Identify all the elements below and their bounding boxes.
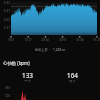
staticText: 10:17 xyxy=(21,38,35,42)
button[interactable]: 6.92 xyxy=(0,0,100,100)
staticText: 4.02 xyxy=(0,18,10,22)
staticText: 2.57 xyxy=(0,26,10,30)
staticText: 平均 xyxy=(5,79,50,83)
staticText: 20:34 xyxy=(38,38,52,42)
staticText: 高度上昇 ・ 1,248 m xyxy=(0,47,100,52)
staticText: 51:25 xyxy=(90,38,100,42)
staticText: 最大 xyxy=(50,79,95,83)
staticText: 30:51 xyxy=(56,38,70,42)
staticText: 120 xyxy=(0,94,10,98)
staticText: 心拍数 (bpm) xyxy=(3,60,30,66)
staticText: 6.92 xyxy=(0,1,10,5)
staticText: 41:08 xyxy=(73,38,87,42)
staticText: 164 xyxy=(50,71,95,80)
staticText: 133 xyxy=(5,71,50,80)
staticText: 180 xyxy=(0,86,10,90)
staticText: 5.47 xyxy=(0,9,10,13)
staticText: 0:00 xyxy=(4,38,18,42)
